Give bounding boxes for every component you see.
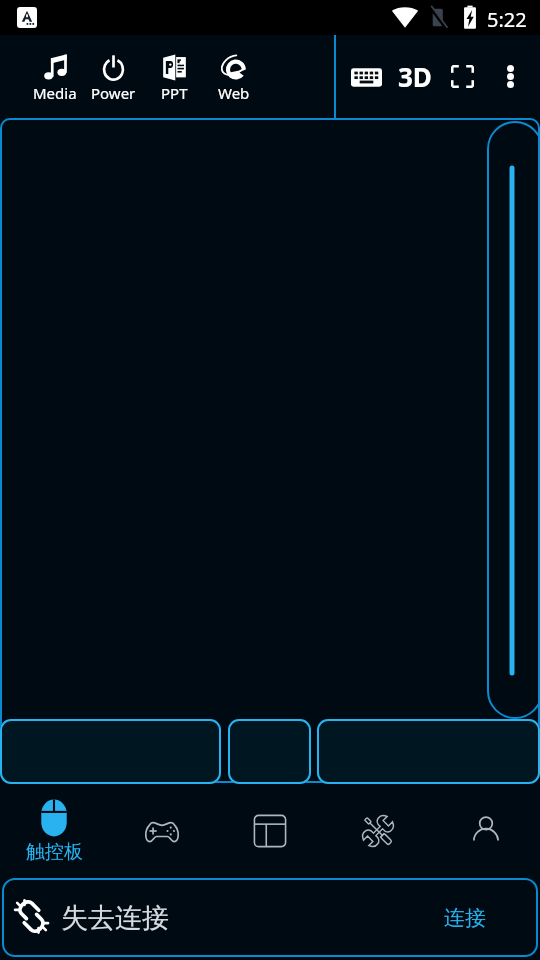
button[interactable]: Profile xyxy=(432,786,540,876)
button[interactable]: Left click xyxy=(0,719,221,784)
button[interactable]: Tools xyxy=(324,786,432,876)
button[interactable]: Middle click xyxy=(228,719,311,784)
button[interactable]: 连接 xyxy=(429,896,501,940)
button[interactable]: PPT xyxy=(144,53,204,113)
staticText: 5:22 xyxy=(487,6,527,33)
staticText: 失去连接 xyxy=(61,901,169,935)
staticText: Media xyxy=(33,83,77,103)
staticText: 连接 xyxy=(444,905,486,931)
button[interactable]: Scroll bar xyxy=(487,121,540,719)
button[interactable]: Web xyxy=(204,53,264,113)
staticText: 3D xyxy=(398,59,432,94)
button[interactable]: Right click xyxy=(317,719,540,784)
staticText: Web xyxy=(218,83,250,103)
staticText: 触控板 xyxy=(26,840,83,864)
button[interactable]: Layout xyxy=(216,786,324,876)
button[interactable]: Keyboard xyxy=(344,55,388,99)
button[interactable]: Touchpad xyxy=(0,786,108,876)
button[interactable]: Media xyxy=(25,53,85,113)
button[interactable]: 3D xyxy=(392,53,437,99)
staticText: PPT xyxy=(161,83,188,103)
staticText: Power xyxy=(91,83,136,103)
button[interactable]: Fullscreen xyxy=(440,53,485,99)
button[interactable]: Gamepad xyxy=(108,786,216,876)
button[interactable]: Touchpad xyxy=(0,118,540,783)
button[interactable]: Power xyxy=(83,53,143,113)
button[interactable]: More options xyxy=(488,53,532,99)
